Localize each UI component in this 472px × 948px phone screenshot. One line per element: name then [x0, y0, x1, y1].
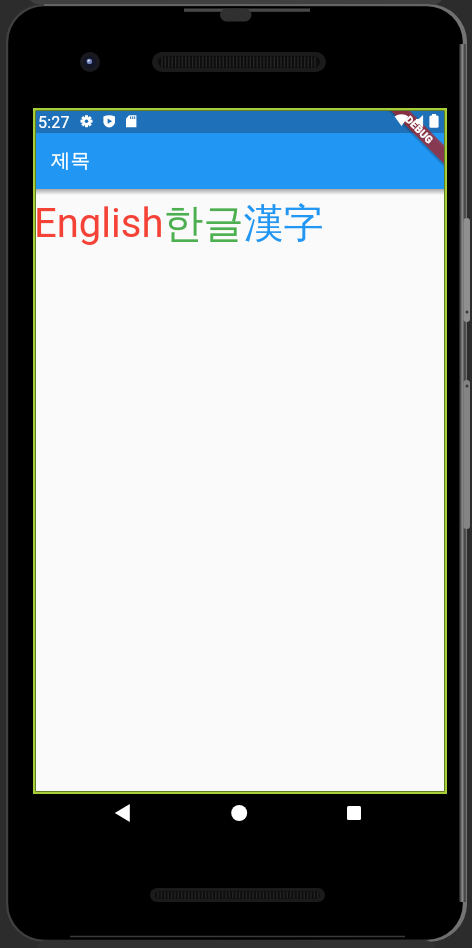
staticText: DEBUG — [403, 114, 436, 147]
staticText: English한글漢字 — [36, 198, 324, 248]
button[interactable] — [333, 797, 375, 829]
button[interactable] — [101, 797, 143, 829]
button[interactable] — [217, 797, 259, 829]
staticText: 제목 — [51, 148, 90, 173]
button[interactable]: 제목 — [36, 133, 444, 189]
staticText: 5:27 — [38, 113, 70, 132]
